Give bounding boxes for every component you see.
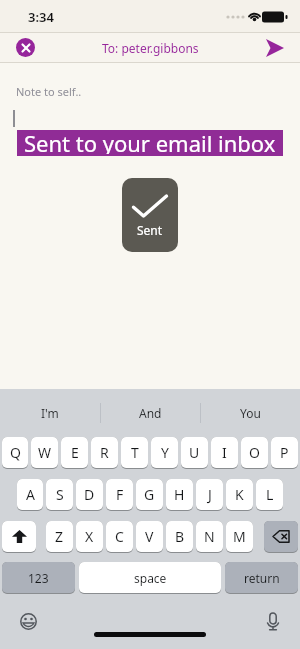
button[interactable]: 123 <box>2 562 75 594</box>
button[interactable]: And <box>101 389 200 437</box>
button[interactable]: O <box>241 437 268 469</box>
button[interactable] <box>264 521 298 553</box>
button[interactable] <box>266 39 284 57</box>
button[interactable]: Y <box>151 437 178 469</box>
staticText: J <box>208 485 212 504</box>
staticText: S <box>56 485 64 504</box>
button[interactable]: return <box>225 562 298 594</box>
staticText: 123 <box>28 570 49 586</box>
staticText: N <box>204 527 215 546</box>
staticText: 3:34 <box>28 8 54 26</box>
button[interactable]: S <box>46 479 73 511</box>
staticText: Z <box>55 527 64 546</box>
staticText: V <box>145 527 154 546</box>
button[interactable]: You <box>201 389 300 437</box>
button[interactable]: E <box>61 437 88 469</box>
button[interactable]: B <box>166 521 193 553</box>
staticText: Y <box>161 443 169 462</box>
button[interactable]: space <box>79 562 221 594</box>
button[interactable]: H <box>166 479 193 511</box>
button[interactable]: F <box>106 479 133 511</box>
button[interactable]: L <box>256 479 283 511</box>
button[interactable] <box>16 38 35 57</box>
button[interactable]: P <box>271 437 298 469</box>
button[interactable]: Q <box>2 437 28 469</box>
button[interactable]: M <box>226 521 253 553</box>
staticText: R <box>100 443 109 462</box>
button[interactable]: R <box>91 437 118 469</box>
staticText: X <box>85 527 94 546</box>
staticText: W <box>38 443 52 462</box>
staticText: D <box>84 485 95 504</box>
staticText: And <box>139 405 162 421</box>
button[interactable]: I <box>211 437 238 469</box>
staticText: T <box>131 443 139 462</box>
staticText: Q <box>10 443 21 462</box>
button[interactable]: G <box>136 479 163 511</box>
button[interactable]: Z <box>46 521 73 553</box>
staticText: return <box>244 570 280 586</box>
button[interactable]: X <box>76 521 103 553</box>
staticText: U <box>189 443 200 462</box>
staticText: C <box>115 527 124 546</box>
staticText: G <box>144 485 155 504</box>
button[interactable]: N <box>196 521 223 553</box>
staticText: To: peter.gibbons <box>102 40 199 56</box>
staticText: K <box>235 485 244 504</box>
staticText: A <box>26 485 35 504</box>
staticText: L <box>266 485 274 504</box>
button[interactable]: W <box>31 437 58 469</box>
button[interactable]: V <box>136 521 163 553</box>
button[interactable]: C <box>106 521 133 553</box>
button[interactable]: T <box>121 437 148 469</box>
staticText: I'm <box>41 405 59 421</box>
staticText: E <box>71 443 79 462</box>
button[interactable]: U <box>181 437 208 469</box>
button[interactable] <box>267 613 279 631</box>
staticText: B <box>175 527 185 546</box>
staticText: H <box>174 485 185 504</box>
button[interactable]: D <box>76 479 103 511</box>
staticText: Note to self.. <box>16 84 82 99</box>
button[interactable]: I'm <box>0 389 100 437</box>
button[interactable]: A <box>17 479 43 511</box>
button[interactable] <box>2 521 36 553</box>
button[interactable]: K <box>226 479 253 511</box>
staticText: Sent <box>137 222 163 238</box>
staticText: M <box>233 527 246 546</box>
staticText: F <box>116 485 124 504</box>
staticText: You <box>240 405 261 421</box>
staticText: space <box>134 570 167 586</box>
staticText: I <box>222 443 227 462</box>
button[interactable] <box>20 613 37 630</box>
button[interactable]: J <box>196 479 223 511</box>
staticText: Sent to your email inbox <box>24 128 276 154</box>
staticText: P <box>280 443 289 462</box>
staticText: O <box>249 443 260 462</box>
